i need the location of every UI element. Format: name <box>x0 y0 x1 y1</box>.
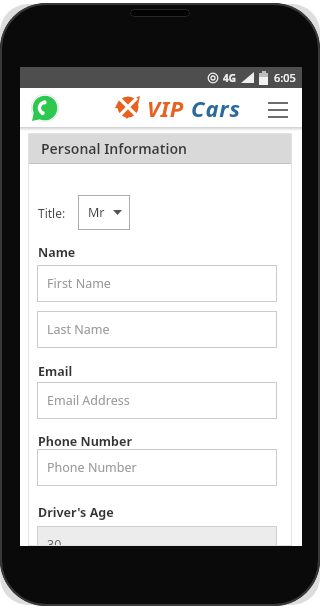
staticText: First Name <box>47 275 111 292</box>
button[interactable]: Phone Number <box>37 449 277 486</box>
button[interactable] <box>268 102 288 118</box>
staticText: Name <box>38 244 76 261</box>
staticText: Cars <box>191 93 241 123</box>
button[interactable]: Email Address <box>37 382 277 419</box>
button[interactable]: Mr <box>78 195 130 230</box>
button[interactable] <box>31 94 59 122</box>
staticText: Email Address <box>47 392 130 409</box>
staticText: Last Name <box>47 321 110 338</box>
staticText: 4G <box>223 71 236 85</box>
button[interactable]: 30 <box>37 526 277 546</box>
staticText: Driver's Age <box>38 504 114 521</box>
staticText: Phone Number <box>47 459 137 476</box>
button[interactable]: First Name <box>37 265 277 302</box>
button[interactable]: Last Name <box>37 311 277 348</box>
staticText: Title: <box>38 205 66 221</box>
staticText: Phone Number <box>38 433 132 450</box>
staticText: Email <box>38 363 73 380</box>
staticText: 30 <box>47 536 62 546</box>
staticText: 6:05 <box>274 70 296 85</box>
staticText: Mr <box>88 204 105 221</box>
staticText: Personal Information <box>41 139 188 158</box>
staticText: VIP <box>147 93 191 123</box>
